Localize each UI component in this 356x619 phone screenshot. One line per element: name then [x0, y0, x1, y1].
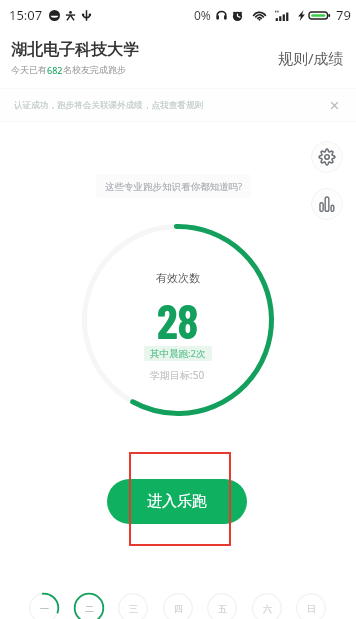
staticText: 其中晨跑:2次 [150, 347, 206, 360]
staticText: 湖北电子科技大学 [11, 40, 139, 60]
staticText: 一 [40, 603, 49, 614]
staticText: 今天已有 [11, 64, 47, 75]
button[interactable]: 进入乐跑 [107, 479, 247, 524]
staticText: 日 [307, 603, 316, 614]
staticText: 28 [157, 292, 199, 348]
staticText: 名校友完成跑步 [63, 64, 126, 75]
staticText: 二 [85, 603, 94, 614]
staticText: 15:07 [9, 6, 43, 24]
button[interactable]: 规则/成绩 [266, 38, 356, 78]
staticText: 79 [336, 6, 351, 24]
staticText: 六 [263, 603, 272, 614]
staticText: 0% [194, 7, 211, 23]
button[interactable]: 一 [29, 593, 59, 619]
staticText: 682 [47, 64, 63, 76]
staticText: 三 [129, 603, 138, 614]
button[interactable]: 日 [296, 593, 326, 619]
staticText: 认证成功，跑步将会关联课外成绩，点我查看规则 [14, 100, 204, 111]
staticText: 五 [218, 603, 227, 614]
staticText: 四 [174, 603, 183, 614]
button[interactable]: 六 [252, 593, 282, 619]
button[interactable]: 认证成功，跑步将会关联课外成绩，点我查看规则 [0, 88, 356, 122]
button[interactable]: 这些专业跑步知识看你都知道吗? [96, 174, 251, 198]
button[interactable]: 二 [74, 593, 104, 619]
staticText: 有效次数 [156, 271, 200, 285]
staticText: 进入乐跑 [147, 492, 207, 511]
button[interactable]: Statistics [311, 188, 343, 220]
button[interactable]: Settings [311, 141, 343, 173]
button[interactable]: 四 [163, 593, 193, 619]
button[interactable]: 三 [118, 593, 148, 619]
button[interactable]: Close [327, 98, 342, 113]
staticText: 这些专业跑步知识看你都知道吗? [105, 180, 243, 193]
staticText: 规则/成绩 [278, 48, 344, 68]
staticText: 学期目标:50 [150, 368, 205, 382]
button[interactable]: 五 [207, 593, 237, 619]
